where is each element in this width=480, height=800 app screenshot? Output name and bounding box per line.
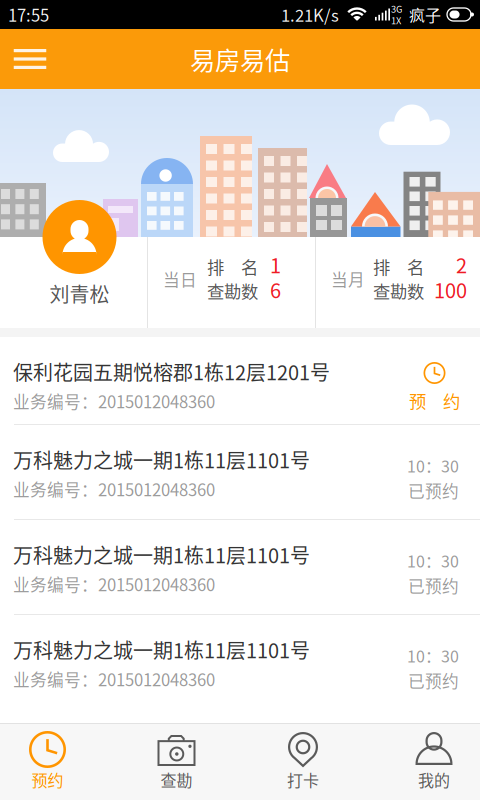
staticText: 业务编号：2015012048360 bbox=[13, 477, 215, 501]
staticText: 易房易估 bbox=[190, 41, 290, 77]
staticText: 1 bbox=[270, 250, 281, 279]
staticText: 预约 bbox=[31, 768, 63, 791]
staticText: 已预约 bbox=[408, 668, 459, 692]
button[interactable]: 打卡 bbox=[240, 723, 360, 800]
button[interactable]: 预约 bbox=[0, 723, 120, 800]
staticText: 业务编号：2015012048360 bbox=[13, 572, 215, 596]
staticText: 6 bbox=[270, 275, 281, 304]
staticText: 万科魅力之城一期1栋11层1101号 bbox=[13, 540, 310, 569]
button[interactable]: 菜单 bbox=[0, 29, 60, 89]
staticText: 已预约 bbox=[408, 573, 459, 597]
staticText: 业务编号：2015012048360 bbox=[13, 389, 215, 413]
button[interactable]: 我的 bbox=[360, 723, 480, 800]
button[interactable]: 万科魅力之城一期1栋11层1101号 bbox=[0, 520, 480, 614]
staticText: 万科魅力之城一期1栋11层1101号 bbox=[13, 445, 310, 474]
staticText: 排 名 bbox=[373, 254, 424, 279]
staticText: 预 约 bbox=[409, 388, 460, 413]
button[interactable]: 万科魅力之城一期1栋11层1101号 bbox=[0, 425, 480, 519]
staticText: 业务编号：2015012048360 bbox=[13, 667, 215, 691]
staticText: 查勘数 bbox=[207, 278, 258, 303]
staticText: 当月 bbox=[331, 267, 365, 291]
staticText: 刘青松 bbox=[49, 279, 109, 308]
staticText: 疯子 bbox=[409, 3, 441, 26]
staticText: 当日 bbox=[163, 267, 197, 291]
staticText: 10：30 bbox=[407, 549, 459, 572]
button[interactable]: 万科魅力之城一期1栋11层1101号 bbox=[0, 615, 480, 709]
button[interactable]: 保利花园五期悦榕郡1栋12层1201号 bbox=[0, 337, 480, 424]
staticText: 查勘 bbox=[160, 768, 192, 791]
staticText: 万科魅力之城一期1栋11层1101号 bbox=[13, 635, 310, 664]
staticText: 1.21K/s bbox=[281, 2, 339, 26]
staticText: 2 bbox=[456, 250, 467, 279]
staticText: 我的 bbox=[418, 768, 450, 791]
staticText: 保利花园五期悦榕郡1栋12层1201号 bbox=[13, 357, 330, 386]
staticText: 已预约 bbox=[408, 478, 459, 502]
staticText: 查勘数 bbox=[373, 278, 424, 303]
staticText: 10：30 bbox=[407, 644, 459, 667]
staticText: 3G bbox=[391, 2, 402, 15]
staticText: 排 名 bbox=[207, 254, 258, 279]
button[interactable]: 查勘 bbox=[120, 723, 240, 800]
staticText: 17:55 bbox=[8, 2, 49, 26]
staticText: 100 bbox=[434, 275, 467, 304]
staticText: 10：30 bbox=[407, 454, 459, 477]
staticText: 1X bbox=[391, 13, 401, 27]
staticText: 打卡 bbox=[287, 768, 319, 791]
